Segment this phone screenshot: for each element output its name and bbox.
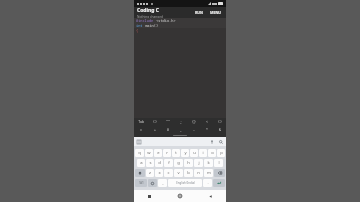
staticText: ; <box>180 120 182 124</box>
button[interactable]: p <box>217 149 225 157</box>
button[interactable]: # <box>161 126 174 134</box>
button[interactable]: Voice input <box>210 140 214 144</box>
button[interactable]: u <box>190 149 198 157</box>
staticText: int <box>136 23 143 28</box>
staticText: d <box>158 160 161 166</box>
staticText: t <box>175 150 177 156</box>
staticText: <stdio.h> <box>154 18 176 23</box>
button[interactable]: Home <box>164 190 195 202</box>
button[interactable]: t <box>172 149 180 157</box>
staticText: RUN <box>195 10 203 15</box>
staticText: + <box>154 128 156 132</box>
button[interactable]: MENU <box>208 9 224 16</box>
button[interactable]: w <box>145 149 153 157</box>
button[interactable]: English (India) <box>168 179 202 187</box>
button[interactable]: = <box>134 126 148 134</box>
button[interactable]: k <box>204 159 213 167</box>
button[interactable]: Tab <box>134 118 148 126</box>
staticText: < <box>206 120 208 124</box>
staticText: n <box>197 170 200 176</box>
staticText: "" <box>166 120 170 124</box>
button[interactable]: h <box>184 159 193 167</box>
button[interactable]: d <box>155 159 163 167</box>
staticText: j <box>198 160 200 166</box>
button[interactable]: j <box>194 159 203 167</box>
staticText: v <box>177 170 180 176</box>
button[interactable]: l <box>214 159 223 167</box>
staticText: r <box>166 150 168 156</box>
staticText: Coding C <box>137 7 159 14</box>
staticText: {} <box>192 120 196 124</box>
button[interactable]: Search <box>219 140 223 144</box>
button[interactable]: & <box>213 126 226 134</box>
button[interactable]: b <box>184 169 193 177</box>
button[interactable]: z <box>146 169 154 177</box>
staticText: a <box>140 160 143 166</box>
button[interactable]: m <box>204 169 213 177</box>
button[interactable]: . <box>203 179 212 187</box>
staticText: c <box>167 170 170 176</box>
staticText: f <box>168 160 170 166</box>
button[interactable]: i <box>199 149 207 157</box>
button[interactable]: e <box>154 149 162 157</box>
staticText: x <box>158 170 161 176</box>
staticText: y <box>184 150 187 156</box>
button[interactable]: #include <box>134 18 226 118</box>
staticText: , <box>162 180 164 186</box>
button[interactable]: RUN <box>193 9 205 16</box>
button[interactable]: * <box>200 126 213 134</box>
staticText: !#1 <box>139 181 144 185</box>
button[interactable]: v <box>174 169 183 177</box>
button[interactable]: s <box>146 159 154 167</box>
button[interactable]: Clipboard <box>137 140 141 144</box>
button[interactable]: Enter <box>213 179 225 187</box>
button[interactable]: !#1 <box>135 179 147 187</box>
staticText: o <box>211 150 214 156</box>
button[interactable]: {} <box>187 118 200 126</box>
staticText: { <box>136 28 139 33</box>
button[interactable]: x <box>155 169 163 177</box>
button[interactable]: ; <box>174 118 187 126</box>
button[interactable]: , <box>174 126 187 134</box>
staticText: q <box>138 150 141 156</box>
button[interactable]: Emoji <box>148 179 157 187</box>
staticText: * <box>206 128 208 132</box>
button[interactable]: < <box>200 118 213 126</box>
staticText: w <box>147 150 151 156</box>
button[interactable]: f <box>164 159 173 167</box>
staticText: k <box>207 160 210 166</box>
staticText: b <box>187 170 190 176</box>
button[interactable]: Back <box>195 190 226 202</box>
button[interactable]: q <box>135 149 144 157</box>
staticText: s <box>149 160 152 166</box>
button[interactable]: y <box>181 149 189 157</box>
button[interactable]: + <box>148 126 161 134</box>
staticText: m <box>207 170 211 176</box>
button[interactable]: c <box>164 169 173 177</box>
staticText: Tab <box>138 120 144 124</box>
button[interactable]: r <box>163 149 171 157</box>
staticText: main() <box>143 23 159 28</box>
button[interactable]: o <box>208 149 216 157</box>
staticText: u <box>193 150 196 156</box>
staticText: l <box>218 160 220 166</box>
button[interactable]: g <box>174 159 183 167</box>
staticText: = <box>140 128 142 132</box>
button[interactable]: () <box>213 118 226 126</box>
staticText: () <box>153 120 157 124</box>
button[interactable]: a <box>137 159 145 167</box>
button[interactable]: Backspace <box>214 169 225 177</box>
button[interactable]: "" <box>161 118 174 126</box>
button[interactable]: Shift <box>135 169 145 177</box>
button[interactable]: Recents <box>134 190 164 202</box>
button[interactable]: n <box>194 169 203 177</box>
button[interactable]: , <box>158 179 167 187</box>
staticText: , <box>180 128 182 132</box>
staticText: i <box>202 150 204 156</box>
staticText: . <box>207 180 209 186</box>
staticText: English (India) <box>176 181 195 185</box>
staticText: & <box>219 128 221 132</box>
button[interactable]: () <box>148 118 161 126</box>
button[interactable]: - <box>187 126 200 134</box>
staticText: g <box>177 160 180 166</box>
